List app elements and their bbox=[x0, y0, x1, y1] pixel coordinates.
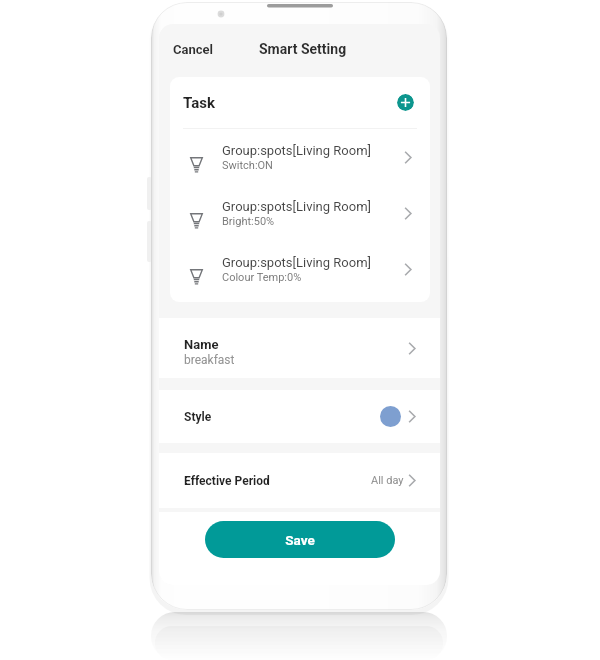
staticText: Name bbox=[184, 337, 219, 352]
staticText: Task bbox=[183, 94, 215, 112]
staticText: Cancel bbox=[173, 42, 213, 57]
staticText: All day bbox=[371, 474, 404, 487]
button[interactable]: Name bbox=[159, 318, 440, 378]
button[interactable]: Save bbox=[205, 521, 395, 558]
staticText: Group:spots[Living Room] bbox=[222, 255, 372, 270]
button[interactable]: Group:spots[Living Room] bbox=[170, 241, 430, 297]
button[interactable]: Group:spots[Living Room] bbox=[170, 129, 430, 185]
button[interactable]: Effective Period bbox=[159, 453, 440, 508]
staticText: Save bbox=[285, 532, 315, 548]
staticText: Group:spots[Living Room] bbox=[222, 143, 372, 158]
staticText: Smart Setting bbox=[259, 41, 347, 57]
staticText: breakfast bbox=[184, 353, 235, 367]
staticText: Bright:50% bbox=[222, 215, 275, 228]
button[interactable]: Add task bbox=[397, 94, 414, 111]
button[interactable]: Cancel bbox=[165, 32, 221, 66]
button[interactable]: Style bbox=[159, 390, 440, 443]
button[interactable]: Group:spots[Living Room] bbox=[170, 185, 430, 241]
staticText: Group:spots[Living Room] bbox=[222, 199, 372, 214]
staticText: Colour Temp:0% bbox=[222, 271, 302, 284]
staticText: Effective Period bbox=[184, 474, 270, 488]
staticText: Style bbox=[184, 410, 212, 424]
staticText: Switch:ON bbox=[222, 159, 273, 172]
